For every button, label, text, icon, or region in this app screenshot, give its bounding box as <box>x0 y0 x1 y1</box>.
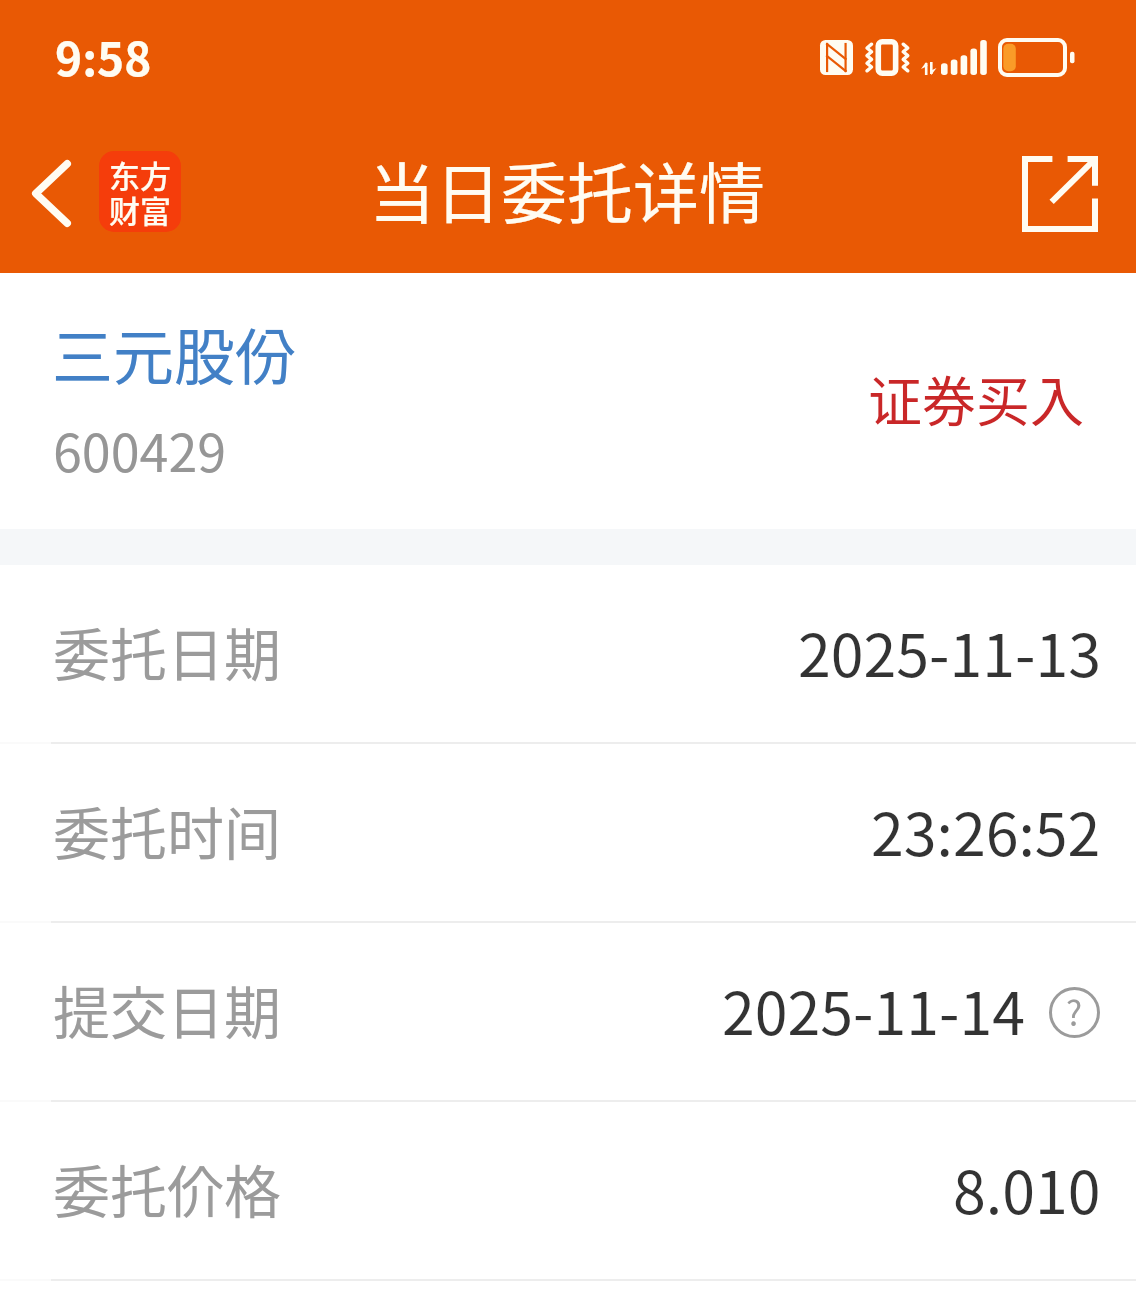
staticText: 23:26:52 <box>871 788 1101 873</box>
staticText: 2025-11-14 <box>722 967 1025 1052</box>
button[interactable]: 委托日期 <box>0 565 1136 742</box>
button[interactable]: Back <box>6 147 96 239</box>
staticText: 东方 财富 <box>109 152 171 232</box>
staticText: 三元股份 <box>52 309 297 397</box>
button[interactable]: Help <box>1047 985 1101 1039</box>
staticText: 2025-11-13 <box>798 609 1101 694</box>
staticText: ? <box>1066 987 1083 1036</box>
button[interactable]: 委托时间 <box>0 744 1136 921</box>
staticText: 当日委托详情 <box>369 141 765 237</box>
staticText: 委托时间 <box>53 789 281 872</box>
staticText: 提交日期 <box>53 968 281 1051</box>
staticText: 9:58 <box>55 23 152 90</box>
staticText: 证券买入 <box>868 359 1084 437</box>
button[interactable]: East Money <box>99 151 181 232</box>
staticText: 8.010 <box>953 1146 1101 1231</box>
button[interactable]: 委托价格 <box>0 1102 1136 1279</box>
button[interactable]: Share <box>1007 141 1112 246</box>
staticText: 600429 <box>53 412 227 487</box>
staticText: 委托价格 <box>53 1147 281 1230</box>
button[interactable]: 提交日期 <box>0 923 1136 1100</box>
staticText: 委托日期 <box>53 610 281 693</box>
